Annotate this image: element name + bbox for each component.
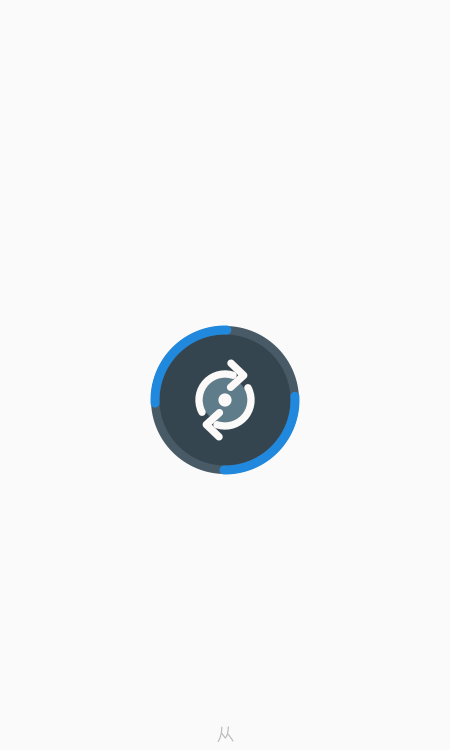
button[interactable]: Syncing — [0, 0, 450, 750]
